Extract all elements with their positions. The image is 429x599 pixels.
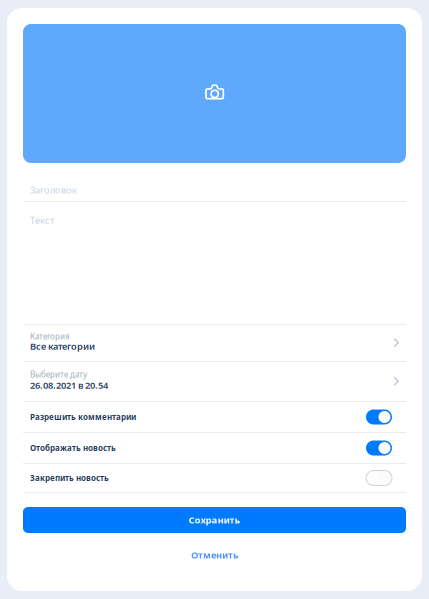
staticText: Закрепить новость bbox=[30, 473, 109, 483]
staticText: 26.08.2021 в 20.54 bbox=[30, 379, 108, 391]
staticText: Отображать новость bbox=[30, 443, 116, 453]
staticText: Сохранить bbox=[188, 514, 240, 526]
button[interactable]: Закрепить новость bbox=[23, 464, 406, 493]
staticText: Все категории bbox=[30, 340, 95, 352]
staticText: Разрешить комментарии bbox=[30, 412, 136, 422]
button[interactable]: Разрешить комментарии bbox=[23, 402, 406, 433]
button[interactable]: Сохранить bbox=[23, 507, 406, 533]
button[interactable]: Добавить фото bbox=[23, 24, 406, 163]
button[interactable]: Категория bbox=[23, 325, 406, 362]
staticText: Текст bbox=[30, 214, 54, 226]
staticText: Отменить bbox=[191, 549, 238, 561]
button[interactable]: Отменить bbox=[23, 544, 406, 566]
staticText: Заголовок bbox=[30, 184, 77, 196]
button[interactable]: Выберите дату bbox=[23, 362, 406, 402]
staticText: Выберите дату bbox=[30, 369, 87, 380]
button[interactable]: Заголовок bbox=[23, 163, 406, 202]
staticText: Категория bbox=[30, 331, 70, 342]
button[interactable]: Отображать новость bbox=[23, 433, 406, 464]
